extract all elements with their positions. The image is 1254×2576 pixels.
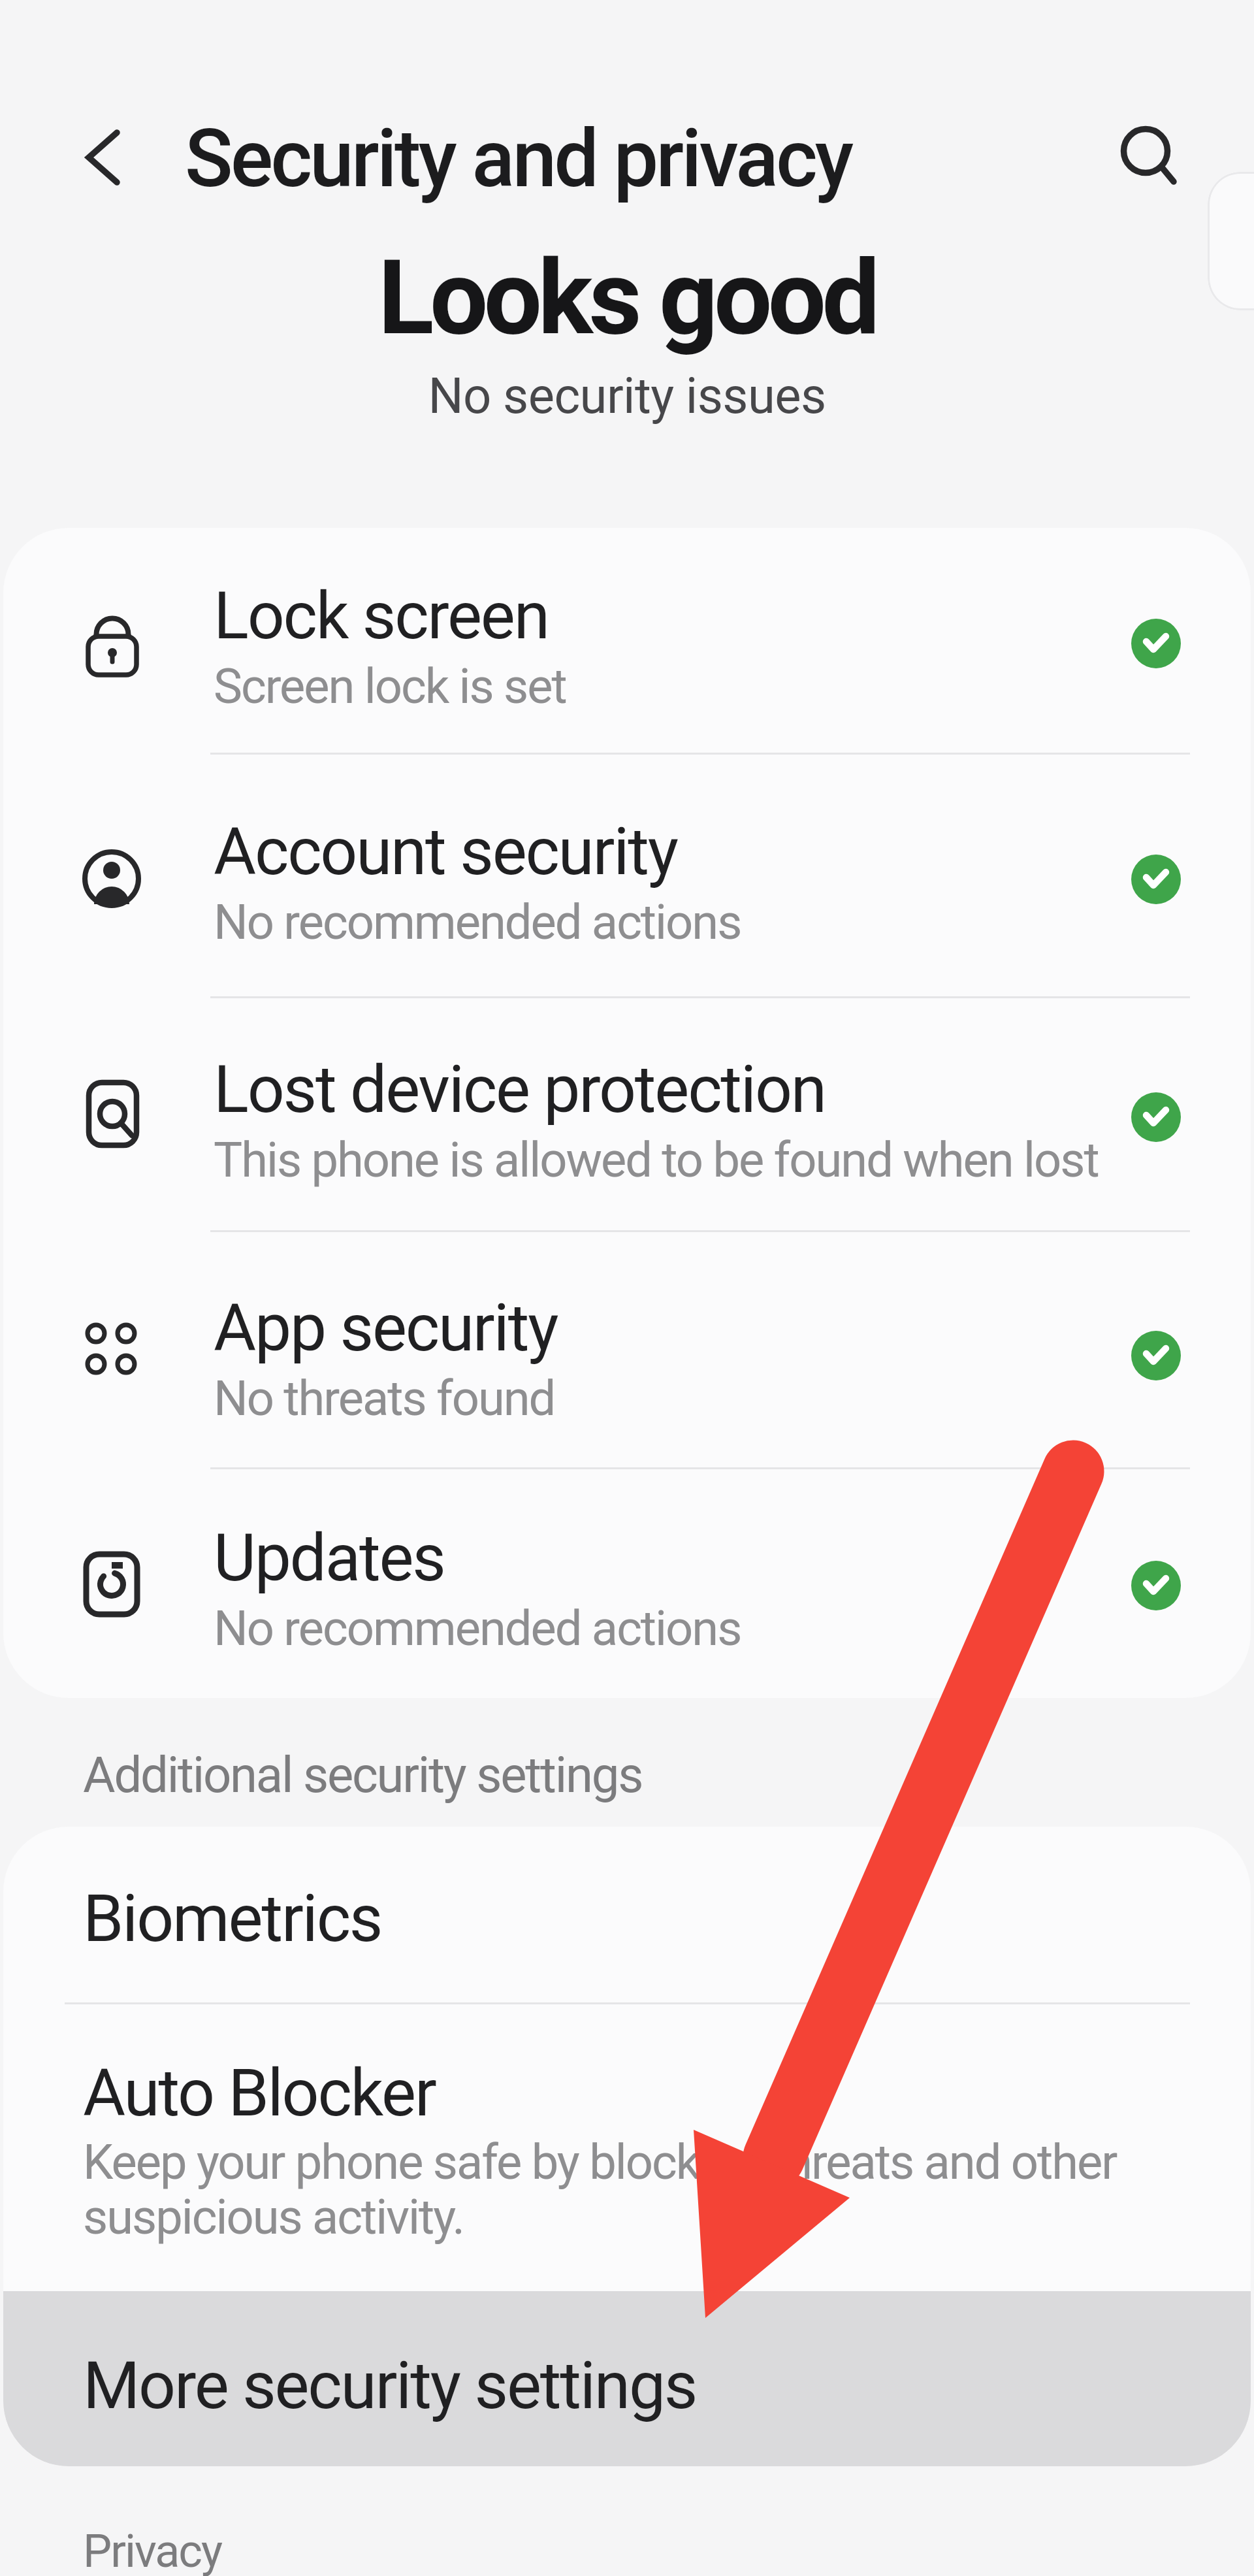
staticText: This phone is allowed to be found when l… <box>214 1132 1099 1188</box>
staticText: No recommended actions <box>214 894 741 951</box>
button[interactable] <box>3 1000 1251 1234</box>
staticText: Keep your phone safe by blocking threats… <box>83 2134 1117 2245</box>
staticText: Looks good <box>0 237 1254 358</box>
staticText: Security and privacy <box>185 112 852 206</box>
button[interactable] <box>3 1239 1251 1473</box>
staticText: Updates <box>214 1520 445 1596</box>
staticText: Privacy <box>83 2524 222 2576</box>
staticText: App security <box>214 1290 558 1366</box>
staticText: No recommended actions <box>214 1600 741 1657</box>
staticText: Lost device protection <box>214 1051 826 1128</box>
button[interactable] <box>3 528 1251 762</box>
button[interactable] <box>3 1469 1251 1698</box>
staticText: Auto Blocker <box>83 2055 436 2131</box>
button[interactable] <box>62 116 147 201</box>
staticText: No threats found <box>214 1370 555 1427</box>
staticText: Screen lock is set <box>214 658 566 715</box>
staticText: Additional security settings <box>83 1746 643 1804</box>
staticText: Biometrics <box>83 1880 382 1957</box>
staticText: Account security <box>214 813 677 890</box>
staticText: More security settings <box>83 2347 697 2424</box>
button[interactable] <box>3 1827 1251 2004</box>
staticText: No security issues <box>0 367 1254 425</box>
button[interactable] <box>3 2004 1251 2291</box>
button[interactable] <box>3 2291 1251 2466</box>
staticText: Lock screen <box>214 578 549 654</box>
button[interactable] <box>1104 110 1192 198</box>
button[interactable] <box>3 762 1251 996</box>
